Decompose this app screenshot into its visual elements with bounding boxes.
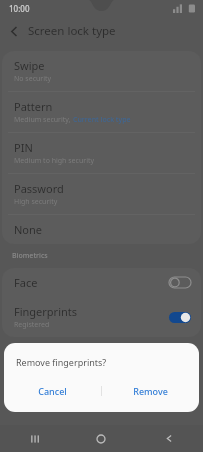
staticText: Medium to high security [14, 156, 95, 166]
staticText: Face [14, 275, 38, 290]
staticText: No security [14, 74, 52, 84]
staticText: Biometrics [12, 251, 48, 261]
staticText: Password [14, 181, 64, 196]
button[interactable]: Recent apps [0, 425, 67, 452]
staticText: Cancel [38, 385, 67, 397]
button[interactable]: Password [2, 174, 201, 214]
button[interactable]: Cancel [4, 380, 101, 402]
staticText: 10:00 [9, 3, 30, 14]
button[interactable]: Face [2, 268, 201, 297]
button[interactable]: PIN [2, 133, 201, 173]
staticText: Fingerprints [14, 304, 78, 319]
staticText: Screen lock type [28, 23, 116, 39]
button[interactable]: Home [67, 425, 135, 452]
button[interactable]: None [2, 215, 201, 244]
staticText: Current lock type [73, 115, 131, 125]
staticText: Pattern [14, 99, 53, 114]
staticText: None [14, 222, 43, 237]
staticText: Remove [133, 385, 168, 397]
staticText: Remove fingerprints? [16, 356, 107, 368]
staticText: Registered [14, 320, 50, 330]
staticText: High security [14, 197, 58, 207]
button[interactable]: Pattern [2, 92, 201, 132]
staticText: PIN [14, 140, 33, 155]
button[interactable]: Fingerprints [2, 297, 201, 337]
staticText: Medium security, [14, 115, 73, 125]
button[interactable]: Remove [102, 380, 199, 402]
button[interactable]: Back [135, 425, 203, 452]
button[interactable]: Back [0, 17, 28, 45]
button[interactable]: Swipe [2, 51, 201, 91]
staticText: Swipe [14, 58, 45, 73]
